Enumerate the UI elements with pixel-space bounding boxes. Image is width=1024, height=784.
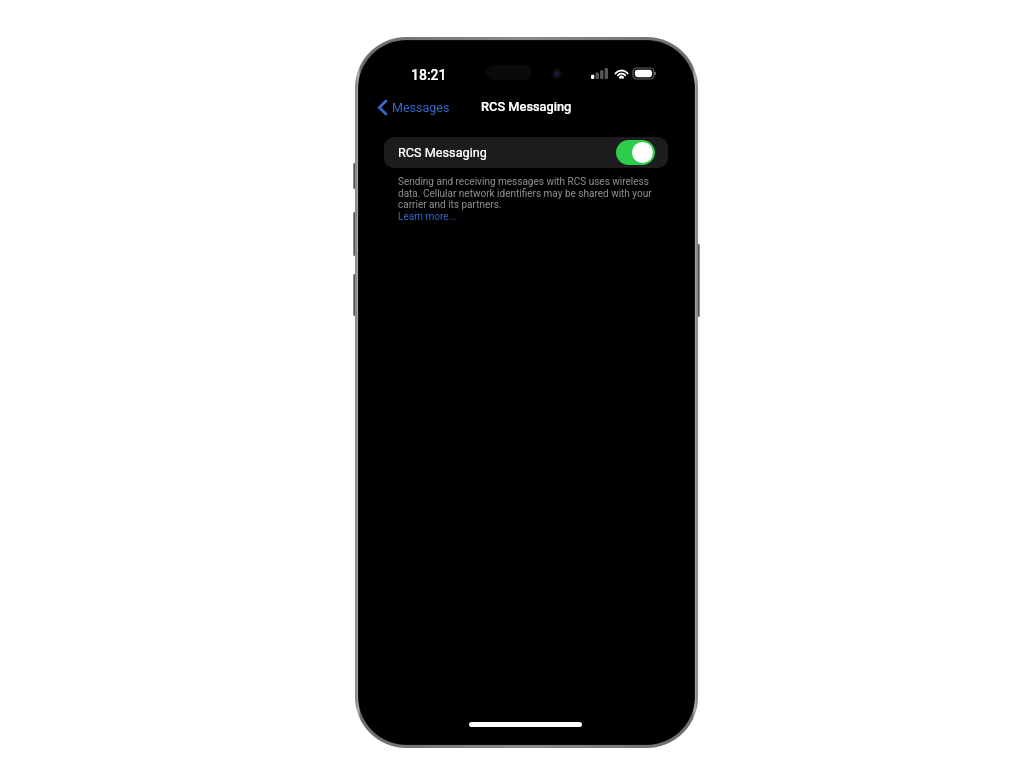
staticText: Messages <box>392 100 450 115</box>
staticText: RCS Messaging <box>481 99 572 114</box>
button[interactable]: RCS Messaging <box>384 137 668 168</box>
staticText: data. Cellular network identifiers may b… <box>398 188 652 200</box>
button[interactable]: Back to Messages <box>373 97 455 118</box>
staticText: carrier and its partners. <box>398 199 502 211</box>
staticText: Sending and receiving messages with RCS … <box>398 176 649 188</box>
staticText: 18:21 <box>411 67 447 83</box>
button[interactable]: Learn more... <box>398 211 457 223</box>
button[interactable]: RCS Messaging, on <box>616 140 655 165</box>
staticText: RCS Messaging <box>398 145 487 160</box>
